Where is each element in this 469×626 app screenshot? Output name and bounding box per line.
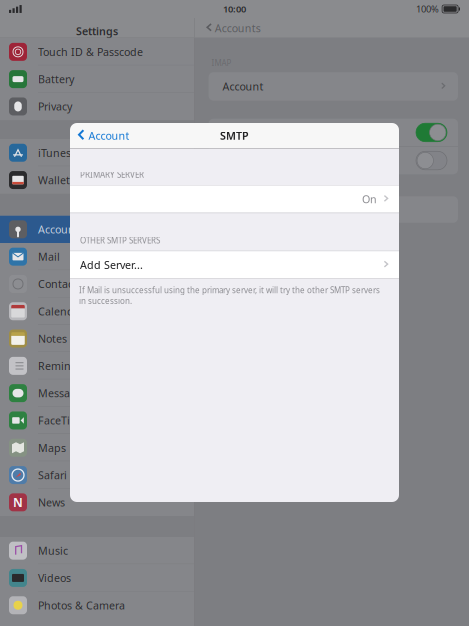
button[interactable]: Photos & Camera (0, 592, 194, 619)
button[interactable]: Contacts (0, 270, 194, 298)
button[interactable]: On (70, 186, 399, 213)
staticText: Messages (38, 386, 88, 400)
button[interactable]: Accounts & Passwords (0, 216, 194, 243)
button[interactable]: Privacy (0, 93, 194, 120)
staticText: FaceTime (38, 413, 86, 428)
staticText: IMAP (212, 58, 232, 68)
staticText: N (13, 494, 23, 510)
button[interactable]: Calendar (0, 298, 194, 325)
button[interactable]: Maps (0, 434, 194, 461)
staticText: SMTP (220, 129, 249, 143)
button[interactable]: iTunes & App Store (0, 139, 194, 166)
staticText: Privacy (38, 99, 72, 114)
button[interactable]: Accounts (195, 18, 469, 38)
staticText: 100% (416, 3, 439, 15)
staticText: OTHER SMTP SERVERS (80, 235, 160, 246)
staticText: Touch ID & Passcode (38, 45, 143, 59)
staticText: If Mail is unsuccessful using the primar… (79, 285, 380, 306)
button[interactable]: Notes (0, 325, 194, 352)
button[interactable]: Mail (0, 243, 194, 270)
staticText: Add Server... (80, 258, 143, 272)
staticText: Notes (38, 331, 67, 346)
staticText: Maps (38, 441, 66, 455)
staticText: Calendar (38, 304, 84, 318)
button[interactable]: Safari (0, 461, 194, 489)
button[interactable]: Touch ID & Passcode (0, 38, 194, 65)
staticText: Photos & Camera (38, 598, 125, 612)
staticText: Account (223, 79, 264, 94)
staticText: Contacts (38, 277, 82, 291)
staticText: Videos (38, 571, 71, 585)
button[interactable]: Battery (0, 65, 194, 93)
staticText: Music (38, 544, 68, 558)
staticText: 10:00 (223, 3, 246, 15)
staticText: Account (88, 129, 129, 143)
button[interactable]: Account (70, 123, 129, 148)
staticText: iTunes & App Store (38, 146, 135, 160)
staticText: Mail (38, 250, 60, 264)
button[interactable]: Reminders (0, 352, 194, 379)
staticText: PRIMARY SERVER (80, 169, 144, 180)
button[interactable]: Add Server... (70, 251, 399, 278)
staticText: Accounts (215, 21, 261, 35)
button[interactable]: Messages (0, 379, 194, 407)
staticText: Safari (38, 468, 67, 482)
staticText: Settings (76, 24, 118, 38)
staticText: News (38, 495, 65, 509)
button[interactable]: FaceTime (0, 407, 194, 434)
staticText: Wallet & Apple Pay (38, 173, 134, 187)
staticText: Accounts & Passwords (38, 222, 150, 236)
button[interactable]: Wallet & Apple Pay (0, 166, 194, 194)
button[interactable]: Account (195, 72, 469, 101)
button[interactable]: Videos (0, 564, 194, 592)
staticText: Battery (38, 72, 74, 86)
button[interactable]: N (0, 489, 194, 516)
staticText: On (362, 192, 377, 206)
staticText: Reminders (38, 359, 93, 373)
button[interactable]: Music (0, 537, 194, 564)
